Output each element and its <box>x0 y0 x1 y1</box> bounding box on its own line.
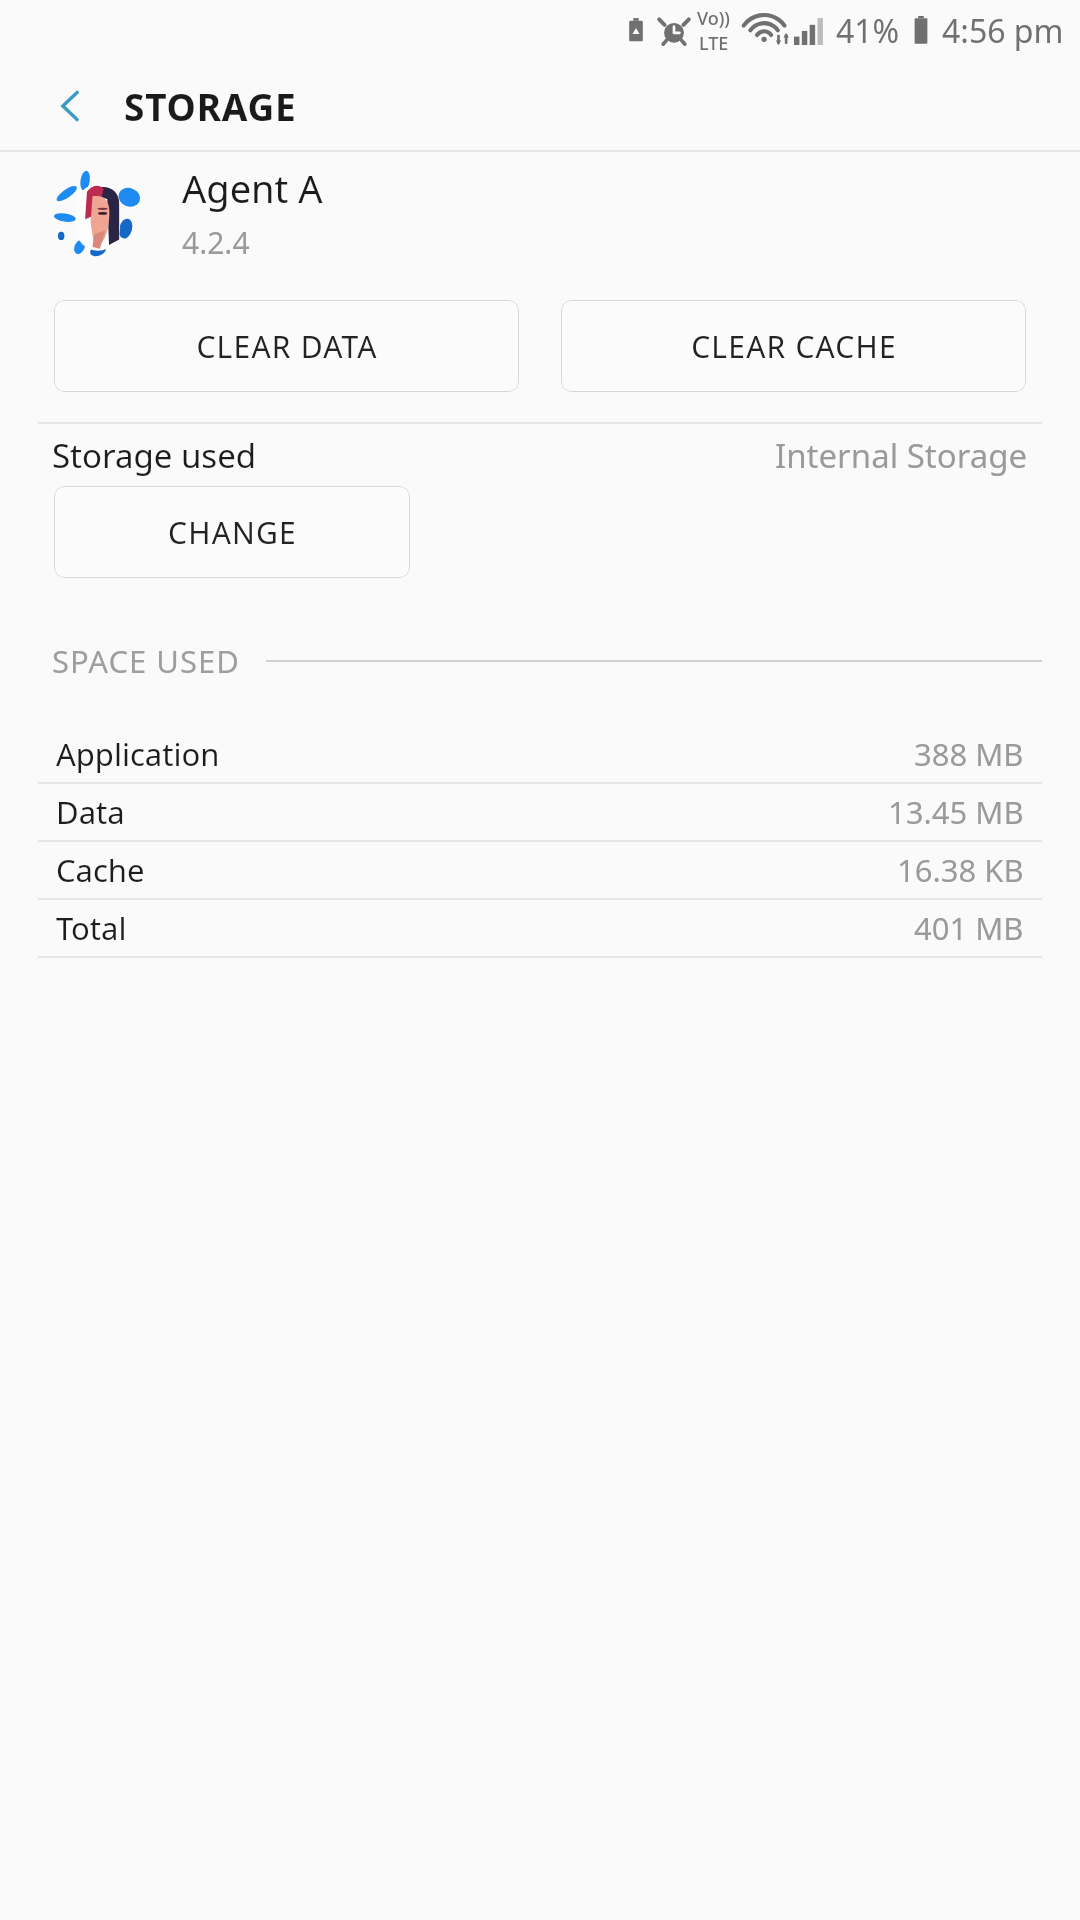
staticText: 401 MB <box>914 907 1024 949</box>
button[interactable]: Back <box>44 79 98 133</box>
button[interactable]: CLEAR CACHE <box>561 300 1026 392</box>
staticText: CHANGE <box>168 512 297 553</box>
staticText: CLEAR CACHE <box>691 326 897 367</box>
button[interactable]: Storage used <box>52 424 1028 486</box>
staticText: Storage used <box>52 433 257 478</box>
button[interactable]: CHANGE <box>54 486 410 578</box>
staticText: Internal Storage <box>775 433 1028 478</box>
staticText: Agent A <box>182 162 323 214</box>
staticText: 41% <box>836 9 900 53</box>
staticText: Data <box>56 791 125 833</box>
button[interactable]: Cache <box>38 842 1042 900</box>
button[interactable]: Data <box>38 784 1042 842</box>
button[interactable]: Total <box>38 900 1042 958</box>
staticText: STORAGE <box>124 81 297 131</box>
staticText: 4:56 pm <box>942 9 1064 53</box>
staticText: 388 MB <box>914 733 1024 775</box>
staticText: Application <box>56 733 220 775</box>
button[interactable]: Application <box>38 726 1042 784</box>
staticText: LTE <box>699 31 729 56</box>
staticText: Cache <box>56 849 145 891</box>
staticText: CLEAR DATA <box>196 326 378 367</box>
staticText: Vo)) <box>697 6 730 31</box>
staticText: 4.2.4 <box>182 222 250 263</box>
staticText: SPACE USED <box>52 640 240 682</box>
staticText: 13.45 MB <box>888 791 1024 833</box>
staticText: Total <box>56 907 127 949</box>
staticText: 16.38 KB <box>897 849 1024 891</box>
button[interactable]: CLEAR DATA <box>54 300 519 392</box>
